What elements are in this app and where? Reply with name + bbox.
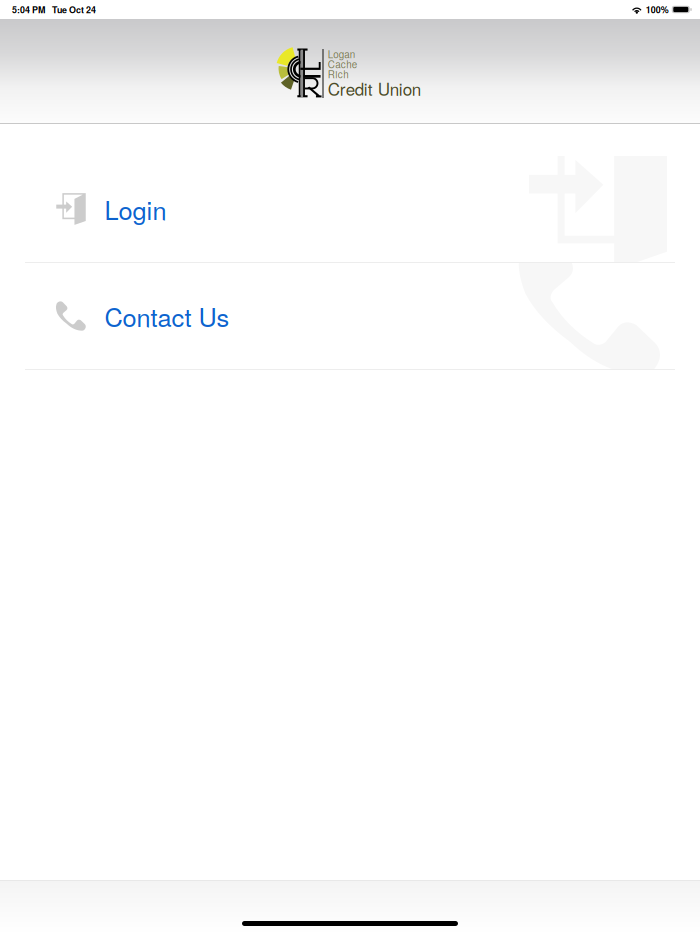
staticText: 5:04 PM xyxy=(12,3,45,16)
staticText: Login xyxy=(104,191,166,227)
button[interactable]: Contact Us xyxy=(0,263,700,369)
staticText: Contact Us xyxy=(104,298,229,334)
staticText: Tue Oct 24 xyxy=(52,3,96,16)
staticText: Cache xyxy=(328,57,357,71)
staticText: Credit Union xyxy=(328,76,421,101)
button[interactable]: Login xyxy=(0,156,700,262)
staticText: Logan xyxy=(328,47,355,61)
staticText: Rich xyxy=(328,67,348,81)
staticText: 100% xyxy=(646,3,669,16)
